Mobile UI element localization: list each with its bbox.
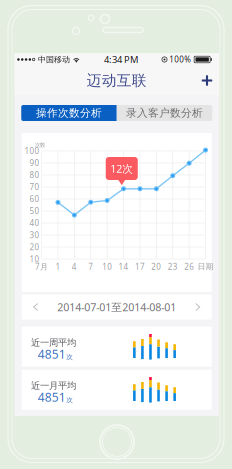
staticText: 70 (30, 182, 40, 192)
button[interactable]: 操作次数分析 (21, 105, 117, 121)
staticText: 中国移动 (38, 55, 70, 64)
staticText: 100% (169, 54, 191, 65)
staticText: 次 (66, 353, 73, 361)
button[interactable]: 近一月平均 (22, 370, 212, 410)
staticText: 20 (151, 261, 161, 272)
staticText: 90 (30, 158, 40, 168)
staticText: 操作次数分析 (36, 106, 102, 119)
staticText: 50 (30, 206, 40, 216)
staticText: 30 (30, 230, 40, 240)
staticText: 次数 (35, 142, 45, 148)
staticText: 14 (118, 261, 128, 272)
staticText: 60 (30, 194, 40, 204)
staticText: 17 (135, 261, 145, 272)
staticText: 1 (55, 261, 60, 272)
staticText: 近一周平均 (31, 337, 76, 348)
staticText: 80 (30, 170, 40, 180)
staticText: 4 (72, 261, 77, 272)
button[interactable]: 录入客户数分析 (117, 105, 212, 121)
staticText: 7 (88, 261, 93, 272)
button[interactable]: 近一周平均 (22, 327, 212, 367)
staticText: 日期 (198, 262, 214, 271)
staticText: 10 (30, 254, 40, 264)
staticText: 4851 (38, 389, 66, 405)
staticText: 10 (102, 261, 112, 272)
staticText: 迈动互联 (87, 71, 147, 89)
staticText: 近一月平均 (31, 380, 76, 391)
button[interactable]: Next period (190, 297, 206, 317)
button[interactable]: Add (195, 68, 219, 92)
staticText: 12次 (110, 161, 133, 176)
staticText: 100 (25, 146, 40, 156)
staticText: 次 (66, 396, 73, 404)
button[interactable]: Previous period (28, 297, 44, 317)
staticText: 40 (30, 218, 40, 228)
staticText: 20 (30, 242, 40, 252)
staticText: 7月 (35, 261, 48, 272)
staticText: 4:34 PM (104, 53, 138, 66)
staticText: 录入客户数分析 (126, 106, 203, 119)
staticText: 26 (184, 261, 194, 272)
staticText: 23 (168, 261, 178, 272)
staticText: 2014-07-01至2014-08-01 (57, 300, 176, 314)
staticText: 4851 (38, 346, 66, 362)
